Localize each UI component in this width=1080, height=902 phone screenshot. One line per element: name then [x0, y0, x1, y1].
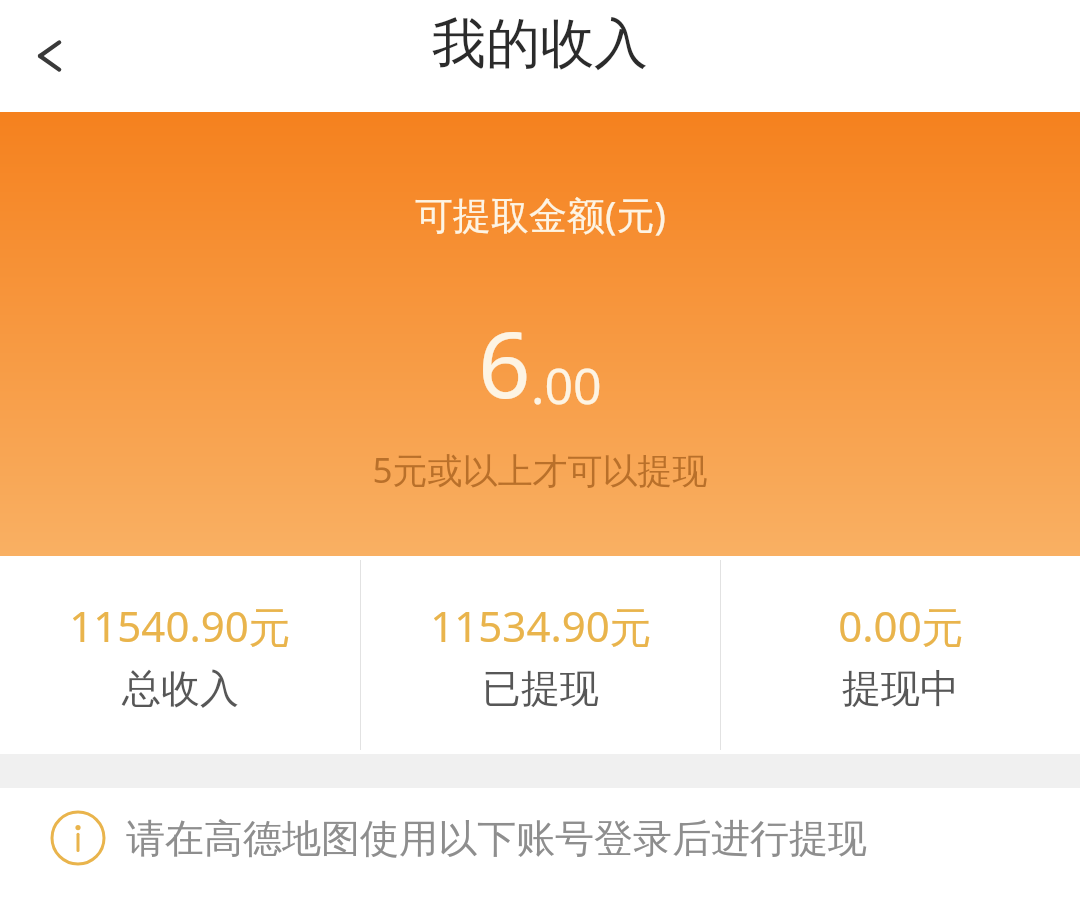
staticText: 0.00元: [838, 597, 964, 654]
staticText: 5元或以上才可以提现: [372, 446, 708, 494]
staticText: 我的收入: [432, 10, 648, 78]
button[interactable]: Back: [14, 22, 82, 90]
button[interactable]: 11540.90元: [0, 556, 360, 754]
staticText: 可提取金额(元): [415, 188, 666, 240]
staticText: 提现中: [842, 664, 959, 713]
staticText: 请在高德地图使用以下账号登录后进行提现: [126, 814, 867, 863]
staticText: 总收入: [122, 664, 239, 713]
staticText: 已提现: [482, 664, 599, 713]
staticText: 11534.90元: [430, 597, 652, 654]
other: Info: [50, 810, 106, 866]
button[interactable]: 11534.90元: [361, 556, 720, 754]
button[interactable]: 0.00元: [721, 556, 1080, 754]
staticText: 11540.90元: [69, 597, 291, 654]
staticText: .00: [531, 351, 602, 419]
staticText: 6: [478, 300, 531, 425]
button[interactable]: Info: [50, 810, 1050, 866]
